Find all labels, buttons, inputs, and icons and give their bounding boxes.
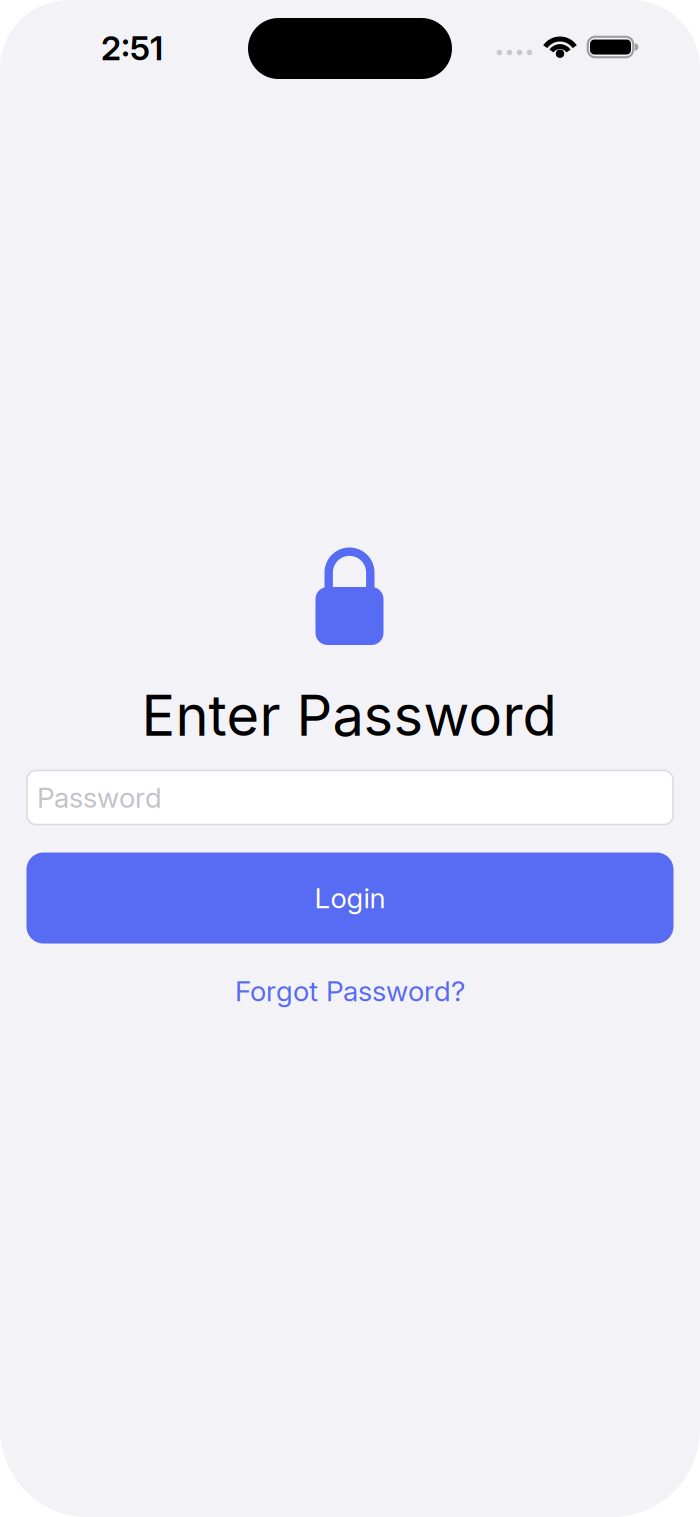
staticText: Password xyxy=(37,781,162,814)
button[interactable]: Login xyxy=(26,852,673,943)
button[interactable]: Forgot Password? xyxy=(235,974,465,1007)
staticText: 2:51 xyxy=(101,28,163,68)
button[interactable]: Password xyxy=(27,770,673,824)
staticText: Login xyxy=(314,881,385,914)
staticText: Forgot Password? xyxy=(235,974,465,1007)
staticText: Enter Password xyxy=(141,682,556,749)
